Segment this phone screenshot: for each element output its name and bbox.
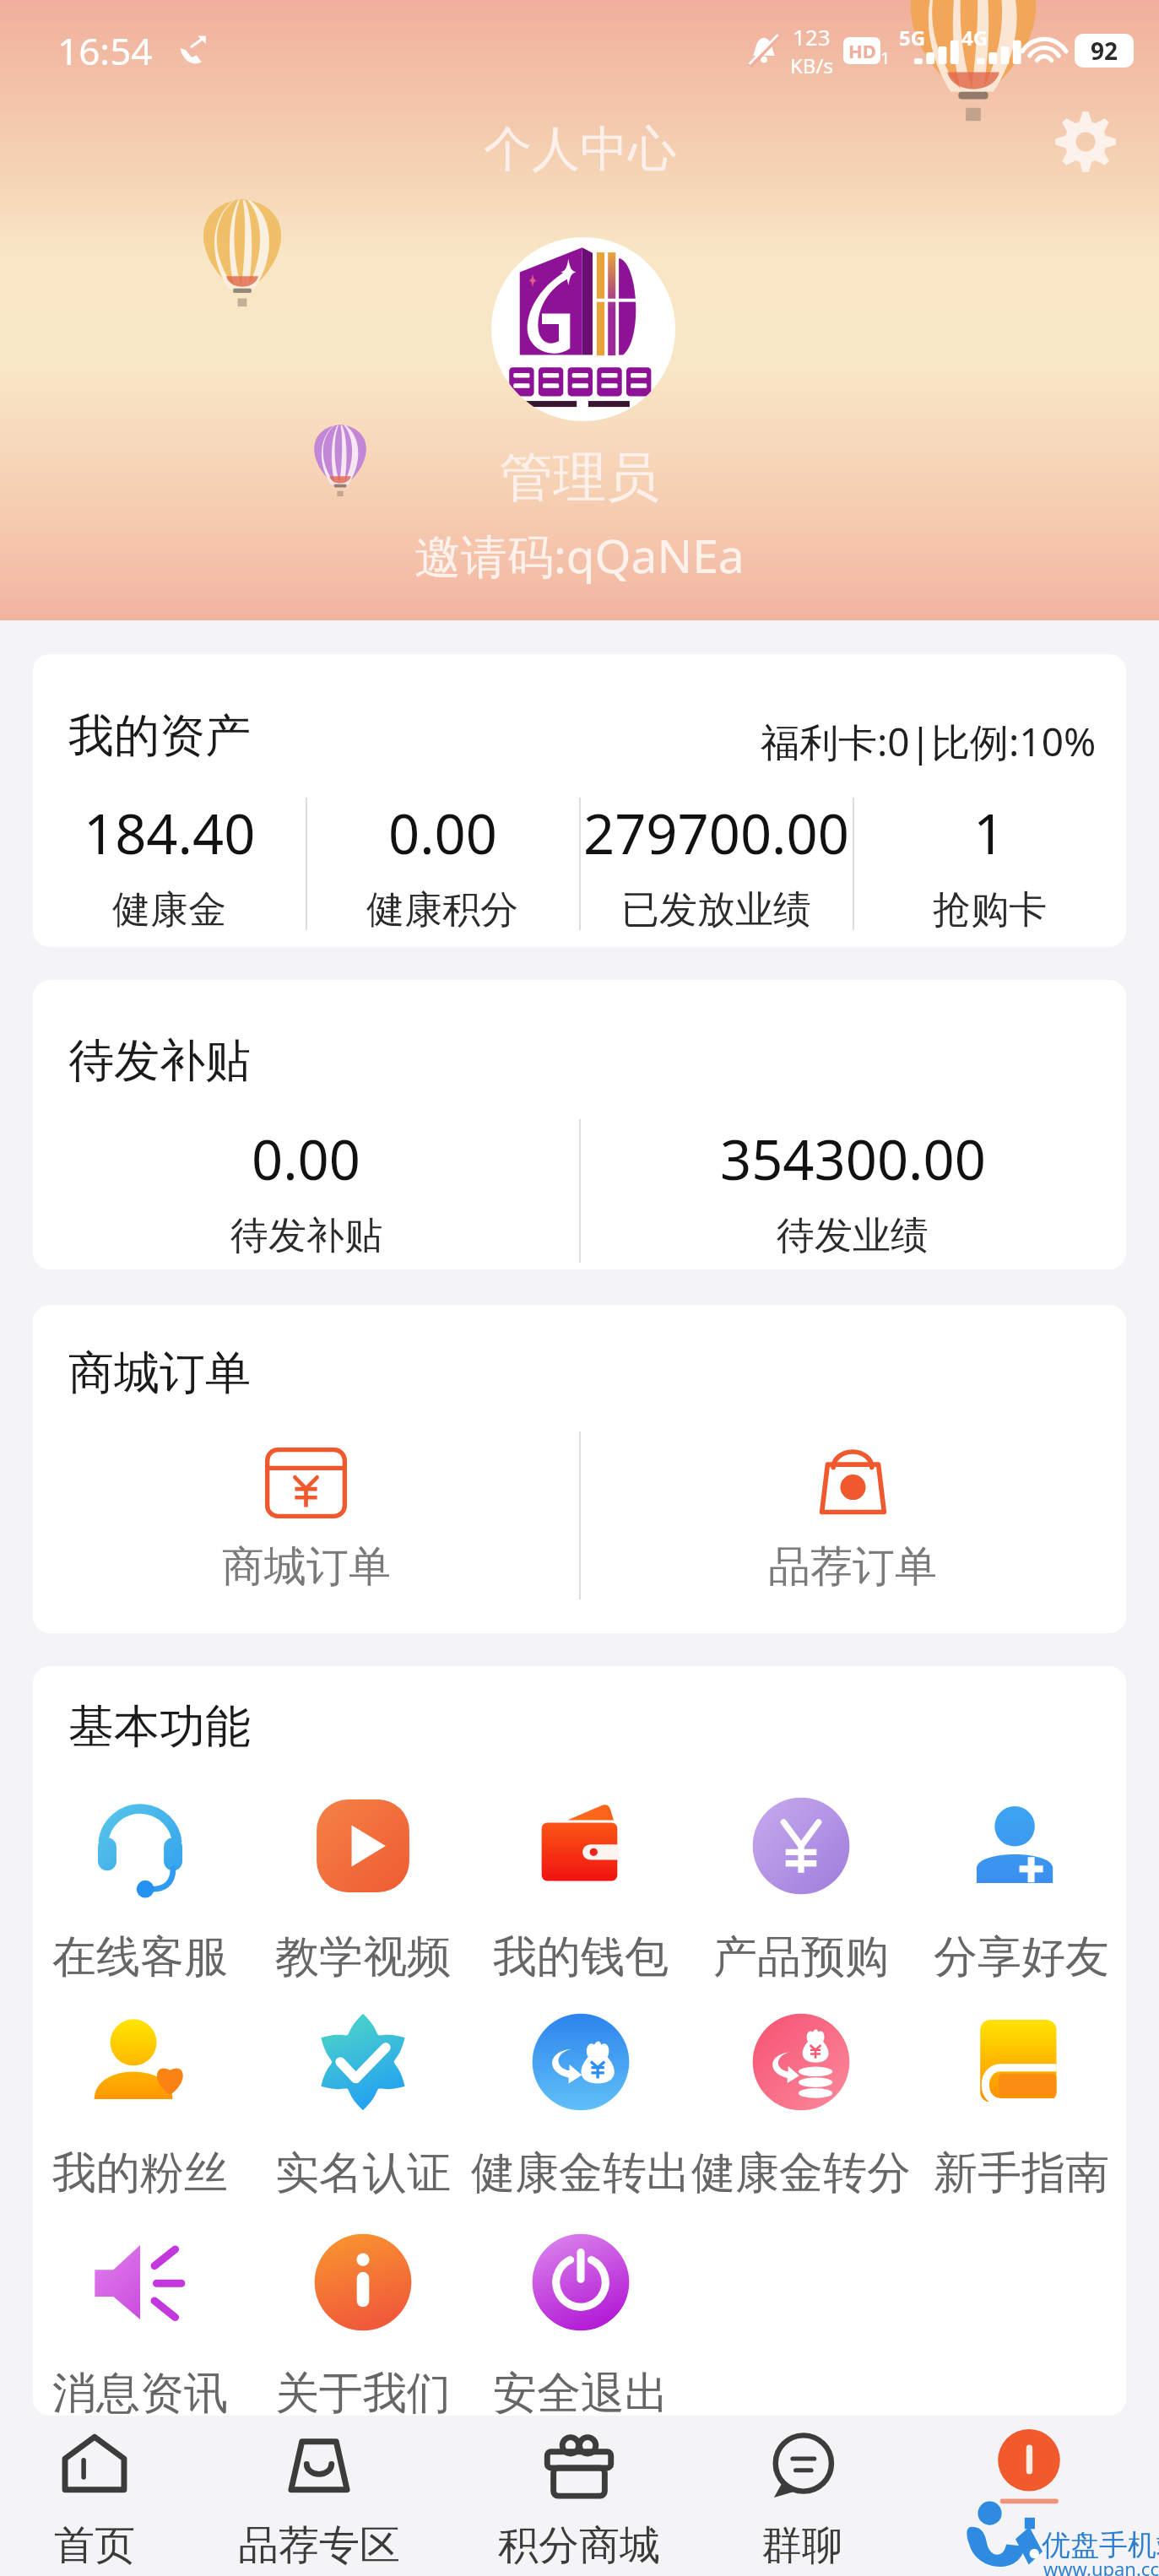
staticText: 产品预购 [713, 1929, 889, 1985]
button[interactable]: 新手指南 [912, 2010, 1126, 2201]
staticText: 待发补贴 [230, 1212, 382, 1260]
staticText: 抢购卡 [933, 886, 1047, 934]
button[interactable]: 我的 [919, 2416, 1139, 2576]
staticText: 商城订单 [68, 1345, 251, 1402]
staticText: 92 [1091, 35, 1118, 67]
staticText: 个人中心 [484, 119, 676, 180]
staticText: 待发业绩 [777, 1212, 929, 1260]
staticText: 健康金 [112, 886, 226, 934]
staticText: 健康金转分 [691, 2146, 911, 2201]
staticText: 福利卡:0|比例:10% [761, 715, 1097, 768]
staticText: 优盘手机站 [1042, 2527, 1159, 2563]
staticText: KB/s [790, 51, 833, 79]
staticText: 0.00 [252, 1122, 360, 1197]
button[interactable]: 品荐专区 [209, 2416, 429, 2576]
staticText: 教学视频 [275, 1929, 451, 1985]
button[interactable]: 健康金转分 [691, 2010, 911, 2201]
button[interactable]: Avatar [491, 237, 675, 421]
button[interactable]: 我的钱包 [471, 1794, 691, 1985]
button[interactable]: 我的粉丝 [33, 2010, 250, 2201]
button[interactable]: 0.00 [306, 796, 579, 934]
staticText: 16:54 [57, 25, 153, 76]
button[interactable]: 产品预购 [691, 1794, 911, 1985]
button[interactable]: 商城订单 [33, 1448, 579, 1594]
staticText: 354300.00 [720, 1122, 986, 1197]
staticText: 279700.00 [583, 796, 849, 871]
button[interactable]: 关于我们 [253, 2231, 473, 2416]
button[interactable]: Settings [1052, 108, 1119, 176]
staticText: 184.40 [84, 796, 256, 871]
staticText: 已发放业绩 [621, 886, 811, 934]
staticText: 首页 [54, 2520, 135, 2571]
button[interactable]: 184.40 [33, 796, 306, 934]
staticText: 关于我们 [275, 2366, 451, 2416]
staticText: 积分商城 [498, 2520, 660, 2571]
button[interactable]: 首页 [0, 2416, 204, 2576]
button[interactable]: 品荐订单 [579, 1448, 1126, 1594]
staticText: 我的钱包 [493, 1929, 669, 1985]
staticText: 品荐专区 [238, 2520, 400, 2571]
staticText: 邀请码:qQaNEa [414, 523, 745, 587]
staticText: 我的资产 [68, 707, 251, 765]
staticText: 待发补贴 [68, 1032, 251, 1090]
staticText: 健康金转出 [471, 2146, 691, 2201]
staticText: 实名认证 [275, 2146, 451, 2201]
staticText: 品荐订单 [768, 1540, 937, 1594]
staticText: 新手指南 [934, 2146, 1109, 2201]
staticText: 商城订单 [222, 1540, 391, 1594]
button[interactable]: 实名认证 [253, 2010, 473, 2201]
button[interactable]: 教学视频 [253, 1794, 473, 1985]
button[interactable]: 积分商城 [469, 2416, 689, 2576]
staticText: 健康积分 [366, 886, 518, 934]
staticText: 5G [899, 24, 926, 51]
staticText: 4G [961, 24, 988, 51]
staticText: 0.00 [388, 796, 497, 871]
button[interactable]: 安全退出 [471, 2231, 691, 2416]
staticText: 在线客服 [52, 1929, 228, 1985]
staticText: www.upan.cc [1043, 2556, 1159, 2576]
staticText: 1 [880, 46, 891, 69]
button[interactable]: 群聊 [692, 2416, 912, 2576]
button[interactable]: 消息资讯 [33, 2231, 250, 2416]
button[interactable]: 279700.00 [579, 796, 853, 934]
button[interactable]: 健康金转出 [471, 2010, 691, 2201]
button[interactable]: 分享好友 [912, 1794, 1126, 1985]
staticText: 群聊 [761, 2520, 842, 2571]
button[interactable]: 0.00 [33, 1122, 579, 1260]
staticText: 消息资讯 [52, 2366, 228, 2416]
staticText: 管理员 [500, 444, 659, 511]
staticText: 分享好友 [934, 1929, 1109, 1985]
staticText: 基本功能 [68, 1698, 251, 1756]
button[interactable]: 1 [853, 796, 1126, 934]
staticText: 我的粉丝 [52, 2146, 228, 2201]
staticText: 123 [793, 22, 831, 51]
staticText: 1 [973, 796, 1005, 871]
button[interactable]: 在线客服 [33, 1794, 250, 1985]
staticText: HD [848, 38, 876, 63]
button[interactable]: 354300.00 [579, 1122, 1126, 1260]
staticText: 安全退出 [493, 2366, 669, 2416]
